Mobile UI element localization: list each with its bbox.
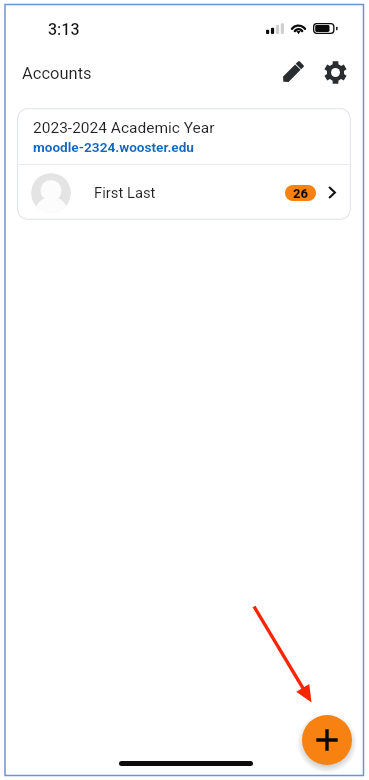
button[interactable]: Settings: [317, 54, 354, 91]
staticText: Accounts: [22, 64, 92, 83]
staticText: 26: [293, 186, 309, 201]
button[interactable]: First Last: [17, 165, 351, 220]
staticText: 2023-2024 Academic Year: [33, 119, 215, 137]
staticText: First Last: [94, 184, 156, 201]
button[interactable]: Edit accounts: [274, 54, 311, 91]
staticText: 3:13: [48, 20, 80, 39]
staticText: moodle-2324.wooster.edu: [33, 139, 194, 155]
button[interactable]: Add account: [302, 715, 352, 765]
